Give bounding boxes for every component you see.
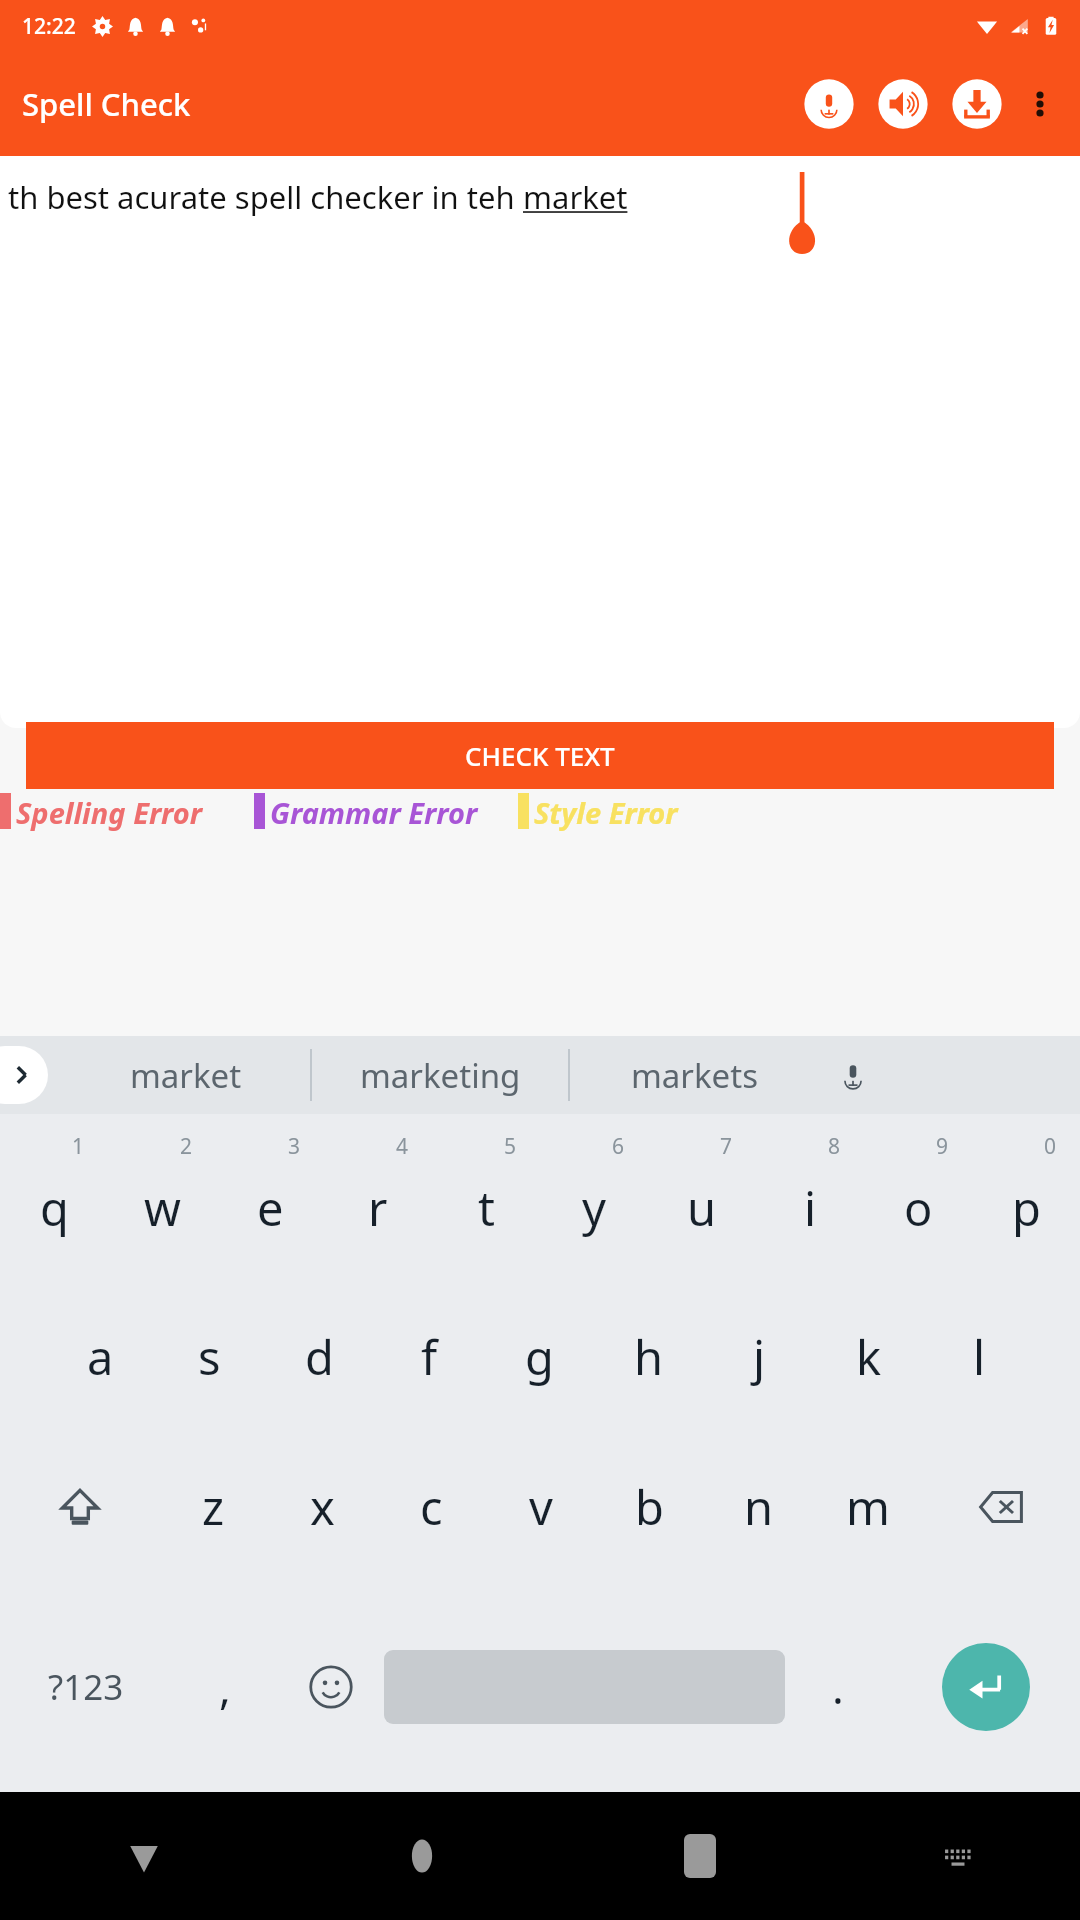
button[interactable]: d <box>264 1282 374 1432</box>
button[interactable]: s <box>155 1282 264 1432</box>
staticText: y <box>582 1176 606 1240</box>
staticText: CHECK TEXT <box>465 738 615 773</box>
staticText: market <box>130 1053 242 1098</box>
staticText: z <box>202 1475 225 1539</box>
button[interactable]: Recent apps <box>561 1792 839 1920</box>
staticText: 4 <box>396 1132 409 1161</box>
staticText: market <box>523 176 628 218</box>
button[interactable]: marketing <box>312 1036 568 1114</box>
staticText: v <box>529 1475 553 1539</box>
staticText: r <box>368 1176 388 1240</box>
staticText: Spell Check <box>22 83 191 125</box>
staticText: e <box>257 1176 284 1240</box>
button[interactable]: Voice typing <box>818 1040 888 1110</box>
button[interactable]: Shift <box>0 1432 159 1582</box>
button[interactable]: Back <box>4 1792 283 1920</box>
button[interactable]: Space <box>384 1582 785 1792</box>
button[interactable]: m <box>813 1432 922 1582</box>
staticText: s <box>198 1325 221 1389</box>
staticText: 6 <box>612 1132 625 1161</box>
button[interactable]: f <box>374 1282 484 1432</box>
staticText: , <box>219 1657 231 1717</box>
staticText: 8 <box>828 1132 841 1161</box>
button[interactable]: b <box>595 1432 704 1582</box>
staticText: j <box>753 1325 766 1389</box>
button[interactable]: Home <box>283 1792 561 1920</box>
staticText: h <box>634 1325 664 1389</box>
button[interactable]: k <box>814 1282 924 1432</box>
staticText: Spelling Error <box>16 793 202 832</box>
staticText: o <box>904 1176 933 1240</box>
staticText: l <box>973 1325 986 1389</box>
button[interactable]: Speak text <box>872 73 934 135</box>
staticText: g <box>525 1325 554 1389</box>
staticText: th best acurate spell checker in teh <box>8 176 523 218</box>
button[interactable]: c <box>377 1432 486 1582</box>
button[interactable]: market <box>62 1036 310 1114</box>
staticText: c <box>420 1475 443 1539</box>
staticText: ?123 <box>48 1663 124 1711</box>
staticText: 2 <box>180 1132 193 1161</box>
button[interactable]: , <box>172 1582 278 1792</box>
staticText: b <box>635 1475 664 1539</box>
staticText: w <box>144 1176 181 1240</box>
staticText: 9 <box>936 1132 949 1161</box>
staticText: k <box>856 1325 882 1389</box>
staticText: u <box>687 1176 717 1240</box>
button[interactable]: markets <box>570 1036 818 1114</box>
button[interactable]: Enter <box>891 1582 1080 1792</box>
staticText: 3 <box>288 1132 301 1161</box>
button[interactable]: ?123 <box>0 1582 172 1792</box>
button[interactable]: a <box>46 1282 155 1432</box>
button[interactable]: 4 <box>324 1114 432 1282</box>
staticText: x <box>310 1475 335 1539</box>
button[interactable]: 6 <box>540 1114 648 1282</box>
button[interactable]: Switch keyboard <box>839 1792 1076 1920</box>
staticText: d <box>305 1325 334 1389</box>
button[interactable]: n <box>704 1432 813 1582</box>
staticText: Grammar Error <box>270 793 478 832</box>
button[interactable]: 7 <box>648 1114 756 1282</box>
button[interactable]: Download <box>946 73 1008 135</box>
staticText: f <box>421 1325 438 1389</box>
staticText: n <box>744 1475 774 1539</box>
button[interactable]: Voice input <box>798 73 860 135</box>
button[interactable]: v <box>486 1432 595 1582</box>
staticText: marketing <box>360 1053 521 1098</box>
button[interactable]: 9 <box>864 1114 972 1282</box>
button[interactable]: l <box>924 1282 1034 1432</box>
staticText: 0 <box>1044 1132 1057 1161</box>
button[interactable]: More options <box>1012 76 1068 132</box>
button[interactable]: Expand suggestions <box>0 1046 48 1104</box>
staticText: markets <box>631 1053 758 1098</box>
staticText: m <box>846 1475 890 1539</box>
button[interactable]: Backspace <box>922 1432 1080 1582</box>
staticText: 5 <box>504 1132 517 1161</box>
staticText: t <box>478 1176 495 1240</box>
button[interactable]: x <box>268 1432 377 1582</box>
staticText: i <box>804 1176 817 1240</box>
button[interactable]: 5 <box>432 1114 540 1282</box>
staticText: 1 <box>72 1132 85 1161</box>
staticText: 12:22 <box>22 12 76 41</box>
button[interactable]: 8 <box>756 1114 864 1282</box>
staticText: Style Error <box>534 793 678 832</box>
staticText: . <box>832 1657 844 1717</box>
button[interactable]: z <box>159 1432 268 1582</box>
staticText: a <box>87 1325 114 1389</box>
button[interactable]: j <box>704 1282 814 1432</box>
button[interactable]: 2 <box>108 1114 216 1282</box>
button[interactable]: g <box>484 1282 594 1432</box>
staticText: q <box>40 1176 69 1240</box>
staticText: 7 <box>720 1132 733 1161</box>
button[interactable]: 1 <box>0 1114 108 1282</box>
button[interactable]: . <box>785 1582 891 1792</box>
staticText: p <box>1012 1176 1041 1240</box>
button[interactable]: h <box>594 1282 704 1432</box>
button[interactable]: 0 <box>972 1114 1080 1282</box>
button[interactable]: 3 <box>216 1114 324 1282</box>
button[interactable]: CHECK TEXT <box>26 722 1054 789</box>
button[interactable]: Emoji <box>278 1582 384 1792</box>
